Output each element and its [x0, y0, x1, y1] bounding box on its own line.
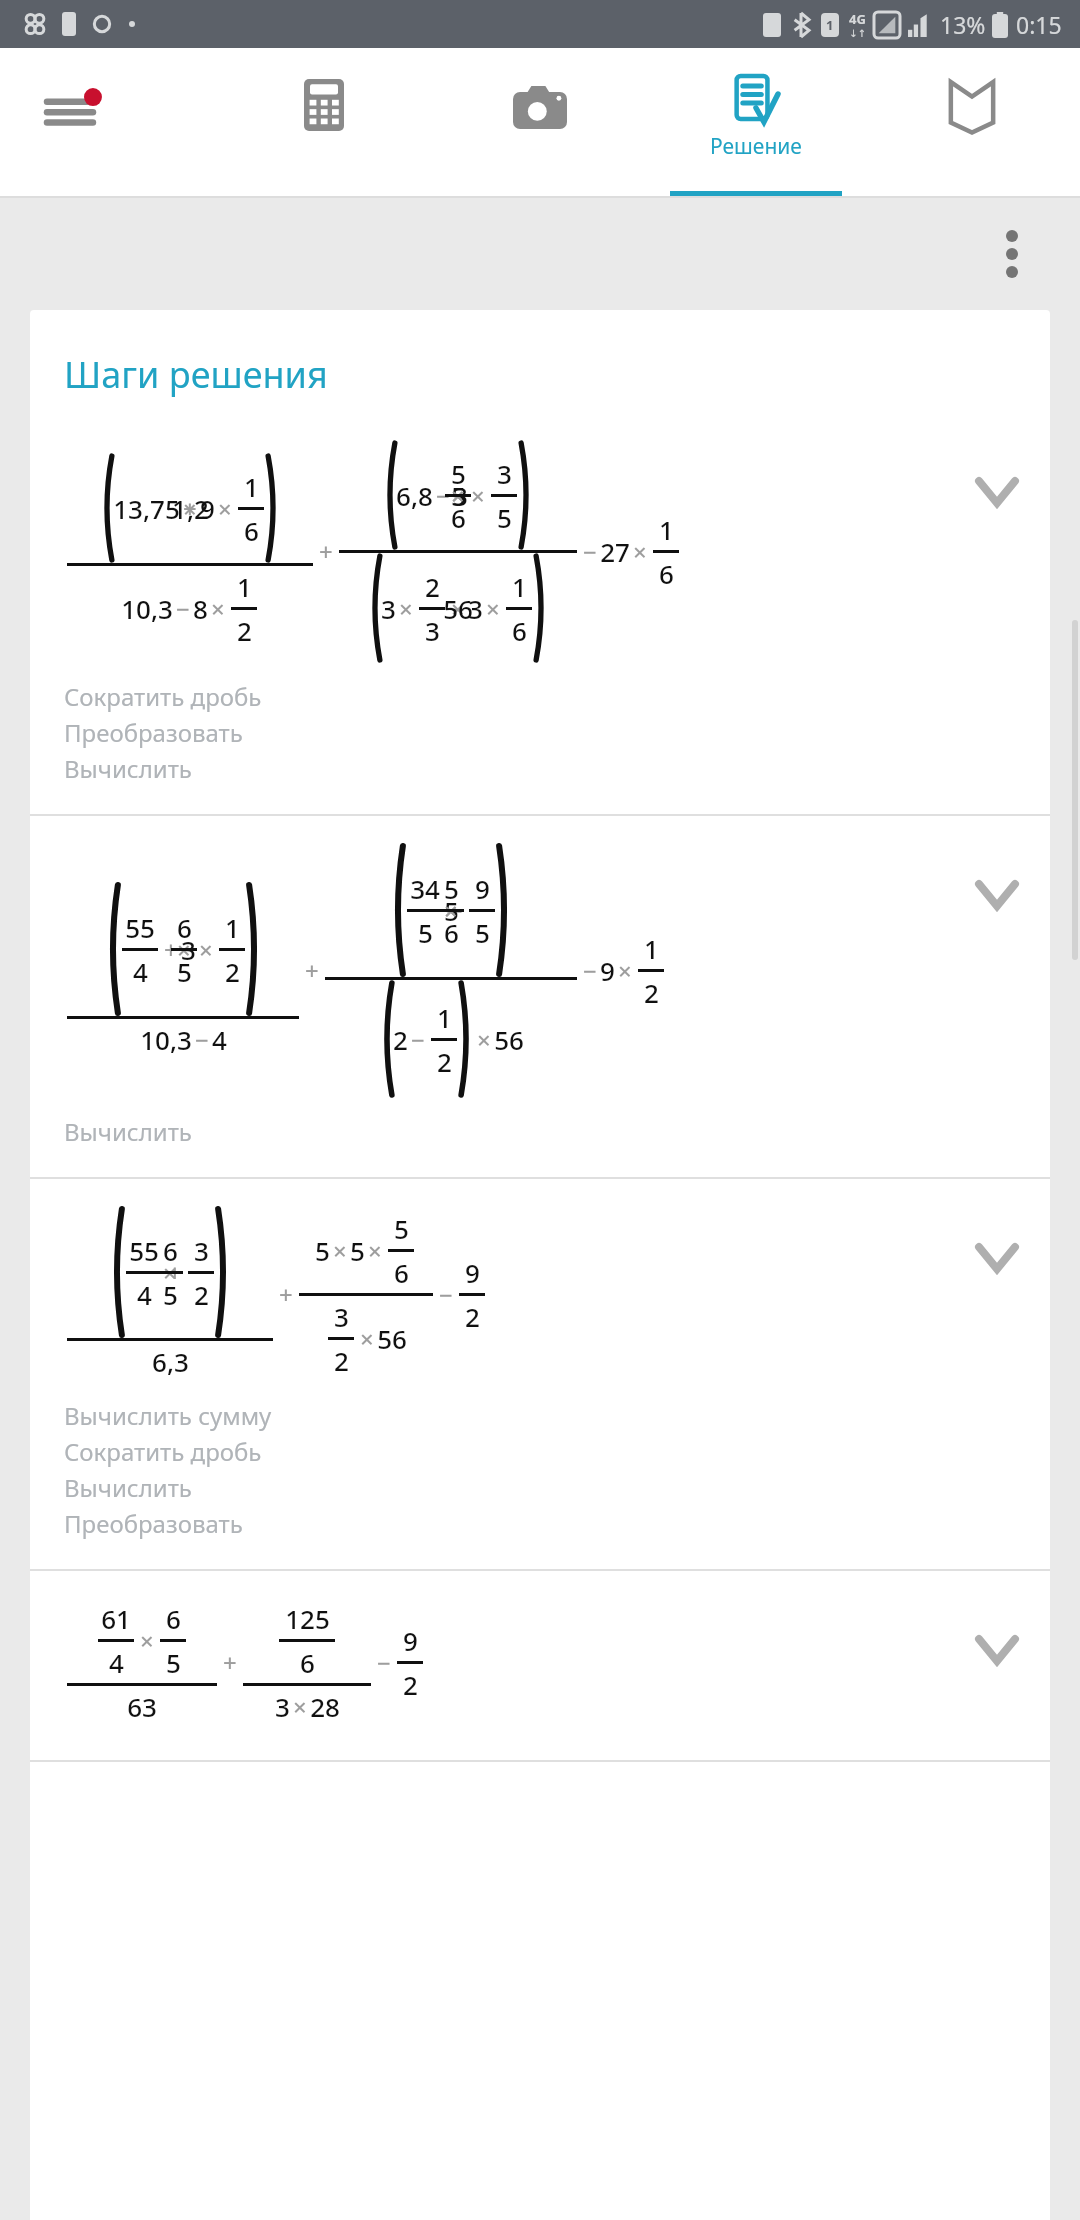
staticText: +: [164, 933, 178, 966]
staticText: 27: [600, 534, 630, 569]
staticText: 6: [444, 915, 459, 950]
staticText: 13,75: [113, 491, 180, 526]
staticText: 4: [212, 1022, 227, 1057]
staticText: 2: [393, 1022, 408, 1057]
button[interactable]: Преобразовать: [64, 716, 243, 749]
staticText: 2: [644, 975, 659, 1010]
staticText: 3: [497, 456, 512, 491]
staticText: 1: [437, 1000, 452, 1035]
button[interactable]: More options: [972, 214, 1052, 294]
staticText: 5: [451, 456, 466, 491]
staticText: 2: [403, 1667, 418, 1702]
staticText: 8: [193, 591, 208, 626]
staticText: 10,3: [121, 591, 173, 626]
staticText: ×: [199, 933, 213, 966]
staticText: 55: [129, 1233, 159, 1268]
button[interactable]: Решение: [648, 48, 864, 198]
staticText: 63: [127, 1689, 157, 1724]
staticText: 5: [444, 871, 459, 906]
staticText: 9: [403, 1623, 418, 1658]
staticText: 56: [494, 1022, 524, 1057]
staticText: ↓↑: [849, 28, 866, 40]
button[interactable]: Сократить дробь: [64, 1435, 262, 1468]
button[interactable]: Сократить дробь: [64, 680, 262, 713]
button[interactable]: Преобразовать: [64, 1507, 243, 1540]
staticText: 5: [315, 1233, 330, 1268]
staticText: −: [583, 535, 597, 568]
button[interactable]: Menu: [0, 48, 216, 198]
button[interactable]: Glossary: [864, 48, 1080, 198]
staticText: 6: [512, 613, 527, 648]
staticText: −: [449, 894, 463, 927]
staticText: ×: [471, 479, 485, 512]
staticText: 56: [443, 591, 473, 626]
staticText: ×: [451, 592, 465, 625]
staticText: 3: [275, 1689, 290, 1724]
staticText: 5: [451, 478, 466, 513]
staticText: −: [411, 1023, 425, 1056]
staticText: 28: [310, 1689, 340, 1724]
staticText: −: [436, 479, 450, 512]
staticText: 9: [475, 871, 490, 906]
staticText: 1,2: [172, 491, 209, 526]
button[interactable]: Вычислить: [64, 1471, 192, 1504]
staticText: 6: [244, 513, 259, 548]
button[interactable]: Expand step: [952, 850, 1042, 940]
staticText: 6: [394, 1255, 409, 1290]
staticText: 5: [497, 500, 512, 535]
staticText: ×: [633, 535, 647, 568]
button[interactable]: Expand step: [952, 1605, 1042, 1695]
staticText: ×: [368, 1234, 382, 1267]
staticText: −: [195, 1023, 209, 1056]
staticText: 1: [225, 910, 240, 945]
staticText: 2: [194, 1277, 209, 1312]
staticText: ×: [451, 479, 465, 512]
button[interactable]: Calculator: [216, 48, 432, 198]
button[interactable]: Expand step: [952, 447, 1042, 537]
staticText: ×: [218, 492, 232, 525]
staticText: 6: [166, 1601, 181, 1636]
button[interactable]: Camera: [432, 48, 648, 198]
staticText: 9: [600, 953, 615, 988]
staticText: 5: [394, 1211, 409, 1246]
staticText: 3: [425, 613, 440, 648]
staticText: 2: [437, 1044, 452, 1079]
staticText: 4G: [849, 10, 866, 28]
staticText: ×: [211, 592, 225, 625]
staticText: 5: [444, 893, 459, 928]
staticText: 6,3: [152, 1344, 189, 1379]
staticText: 61: [101, 1601, 131, 1636]
staticText: 1: [659, 512, 674, 547]
staticText: 3: [468, 591, 483, 626]
staticText: ×: [451, 479, 465, 512]
staticText: +: [279, 1278, 293, 1311]
staticText: 34: [410, 871, 440, 906]
staticText: 4: [137, 1277, 152, 1312]
staticText: ×: [360, 1322, 374, 1355]
staticText: −: [439, 1278, 453, 1311]
staticText: 6: [451, 500, 466, 535]
staticText: 5: [418, 915, 433, 950]
staticText: 125: [285, 1601, 330, 1636]
staticText: 5: [166, 1645, 181, 1680]
staticText: 2: [465, 1299, 480, 1334]
button[interactable]: Вычислить сумму: [64, 1399, 272, 1432]
button[interactable]: Expand step: [952, 1213, 1042, 1303]
staticText: 2: [237, 613, 252, 648]
staticText: 2: [225, 954, 240, 989]
staticText: ×: [477, 1023, 491, 1056]
staticText: ×: [444, 894, 458, 927]
staticText: 9: [200, 491, 215, 526]
button[interactable]: Вычислить: [64, 1115, 192, 1148]
staticText: +: [223, 1646, 237, 1679]
staticText: 2: [425, 569, 440, 604]
staticText: ×: [293, 1690, 307, 1723]
staticText: 1: [644, 931, 659, 966]
staticText: 1: [244, 469, 259, 504]
staticText: +: [319, 535, 333, 568]
staticText: 1: [826, 16, 834, 34]
staticText: ×: [618, 954, 632, 987]
staticText: Решение: [710, 132, 802, 161]
button[interactable]: Вычислить: [64, 752, 192, 785]
staticText: 3: [181, 932, 196, 967]
